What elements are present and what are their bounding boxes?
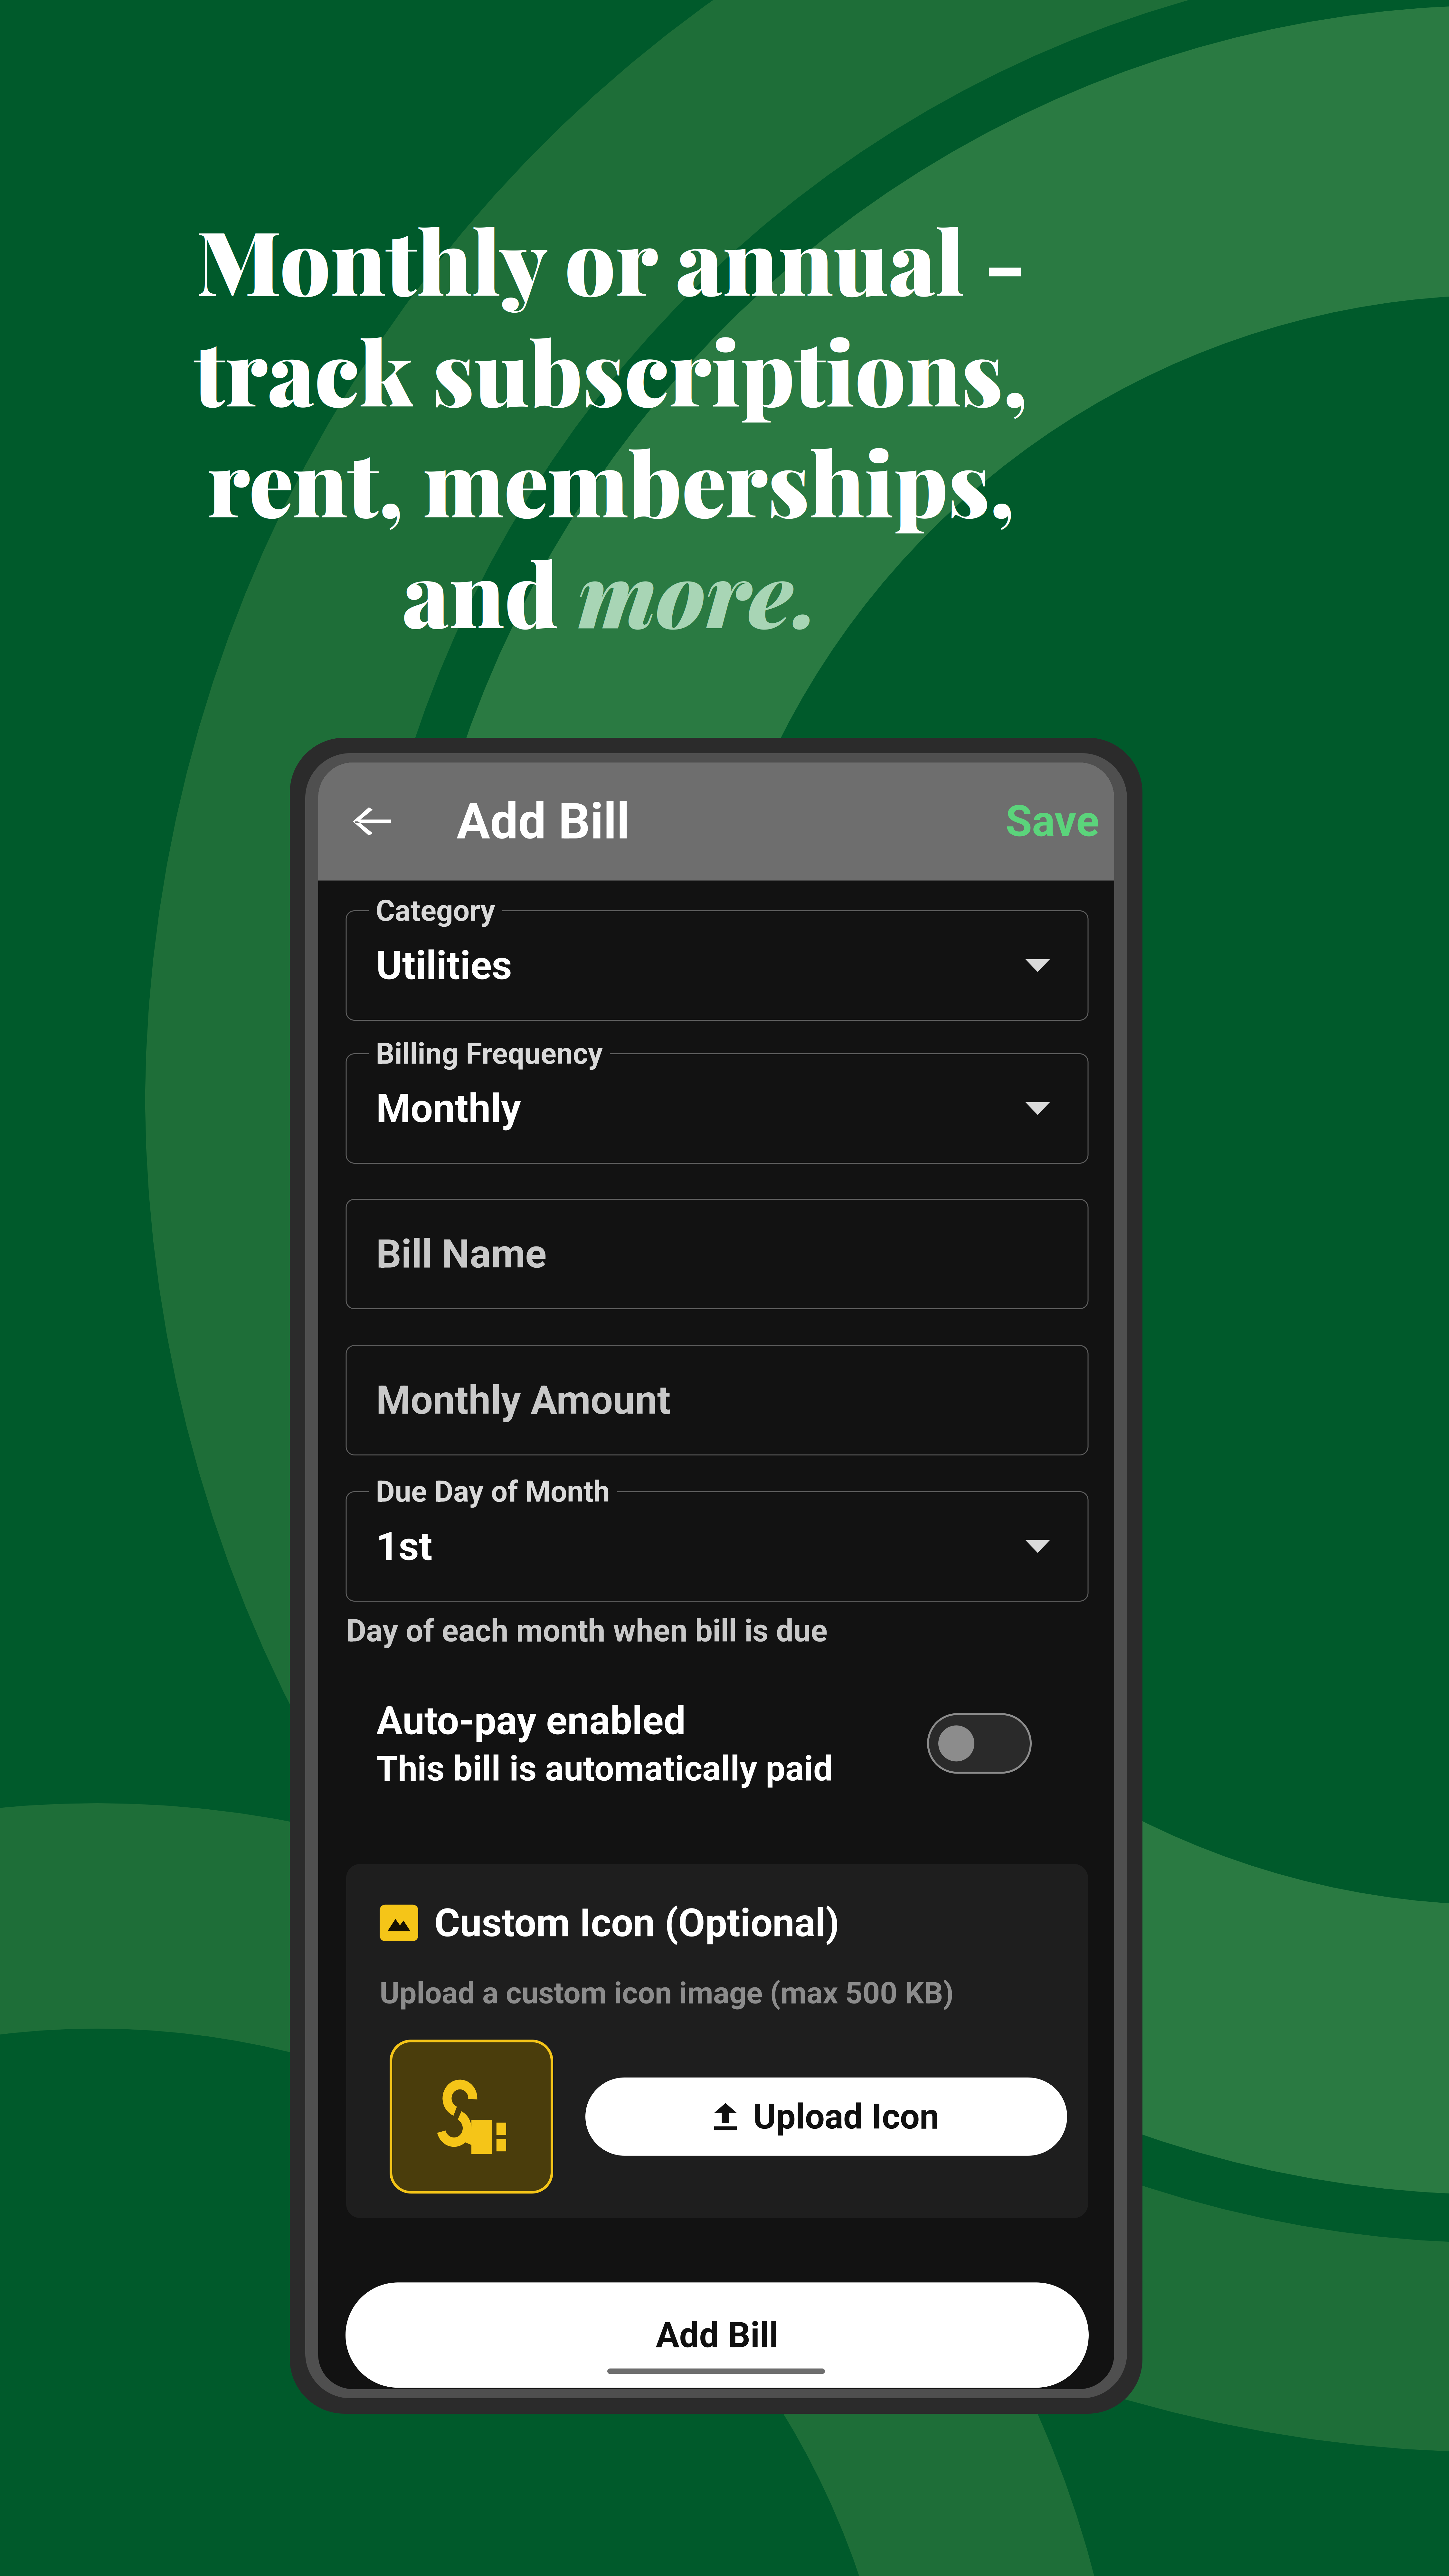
staticText: This bill is automatically paid xyxy=(376,1748,833,1789)
staticText: Due Day of Month xyxy=(376,1475,610,1509)
staticText: track subscriptions, xyxy=(194,311,1028,429)
staticText: rent, memberships, xyxy=(207,422,1014,540)
staticText: Upload a custom icon image (max 500 KB) xyxy=(380,1975,954,2011)
button[interactable]: Monthly xyxy=(346,1054,1088,1163)
staticText: Monthly xyxy=(376,1085,521,1132)
button[interactable]: Upload Icon xyxy=(585,2077,1067,2156)
staticText: Add Bill xyxy=(457,792,630,851)
staticText: Category xyxy=(376,894,495,928)
staticText: 1st xyxy=(376,1523,432,1570)
staticText: Day of each month when bill is due xyxy=(346,1613,828,1649)
button[interactable]: Save xyxy=(1006,762,1114,881)
staticText: Billing Frequency xyxy=(376,1037,603,1071)
staticText: and xyxy=(402,533,578,651)
staticText: Add Bill xyxy=(656,2314,778,2356)
staticText: Monthly or annual - xyxy=(196,200,1026,318)
button[interactable]: Utilities xyxy=(346,911,1088,1020)
staticText: Monthly Amount xyxy=(376,1377,671,1423)
button[interactable]: 1st xyxy=(346,1492,1088,1601)
button[interactable]: Add Bill xyxy=(346,2282,1089,2388)
staticText: more. xyxy=(578,533,819,651)
staticText: Utilities xyxy=(376,942,512,989)
staticText: Save xyxy=(1006,796,1099,847)
button[interactable]: Back xyxy=(318,762,457,881)
staticText: Auto-pay enabled xyxy=(376,1698,686,1744)
button[interactable]: Monthly Amount xyxy=(346,1345,1088,1455)
staticText: Upload Icon xyxy=(753,2096,939,2137)
staticText: Bill Name xyxy=(376,1231,546,1277)
staticText: Custom Icon (Optional) xyxy=(434,1900,839,1946)
button[interactable]: Bill Name xyxy=(346,1199,1088,1309)
button[interactable]: Auto-pay enabled xyxy=(346,1698,1088,1789)
